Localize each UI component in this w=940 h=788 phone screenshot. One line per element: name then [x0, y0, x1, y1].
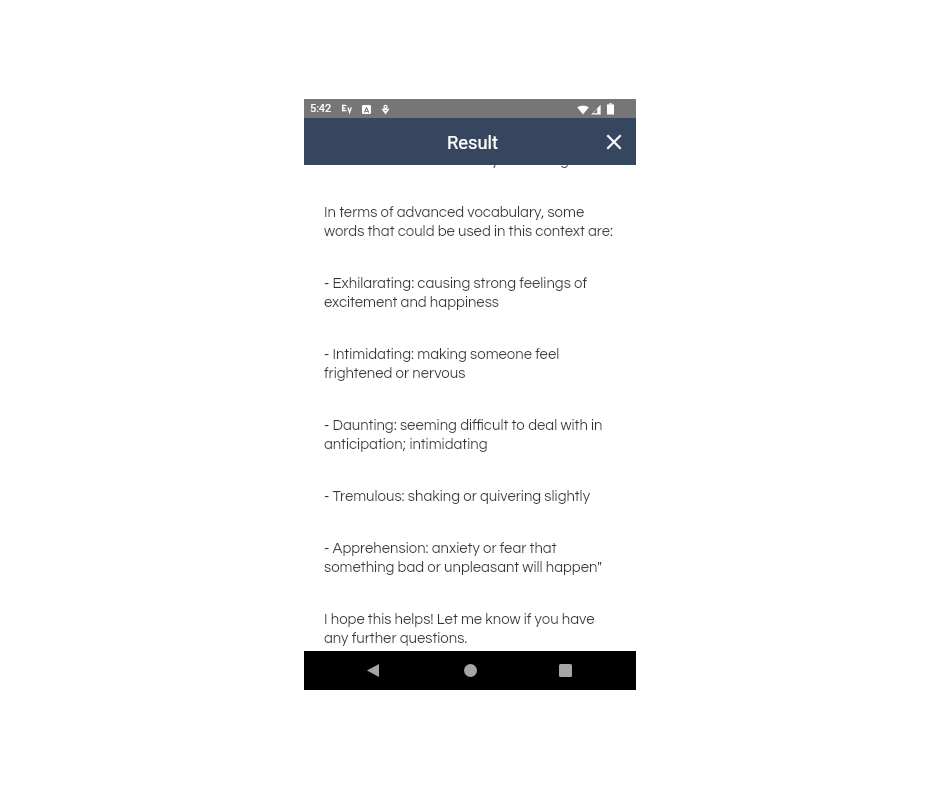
button[interactable]: Close [596, 124, 632, 160]
button[interactable]: Recents [545, 651, 585, 690]
staticText: - Apprehension: anxiety or fear that som… [324, 541, 618, 575]
button[interactable]: Home [450, 651, 490, 690]
staticText: - Exhilarating: causing strong feelings … [324, 276, 618, 310]
staticText: 5:42 [310, 102, 332, 115]
staticText: In terms of advanced vocabulary, some wo… [324, 205, 618, 239]
staticText: with the situation that they are facing [324, 153, 569, 168]
staticText: - Daunting: seeming difficult to deal wi… [324, 418, 618, 452]
staticText: - Tremulous: shaking or quivering slight… [324, 489, 591, 504]
staticText: I hope this helps! Let me know if you ha… [324, 612, 618, 646]
button[interactable]: Back [353, 651, 393, 690]
staticText: - Intimidating: making someone feel frig… [324, 347, 618, 381]
staticText: Result [447, 132, 498, 153]
